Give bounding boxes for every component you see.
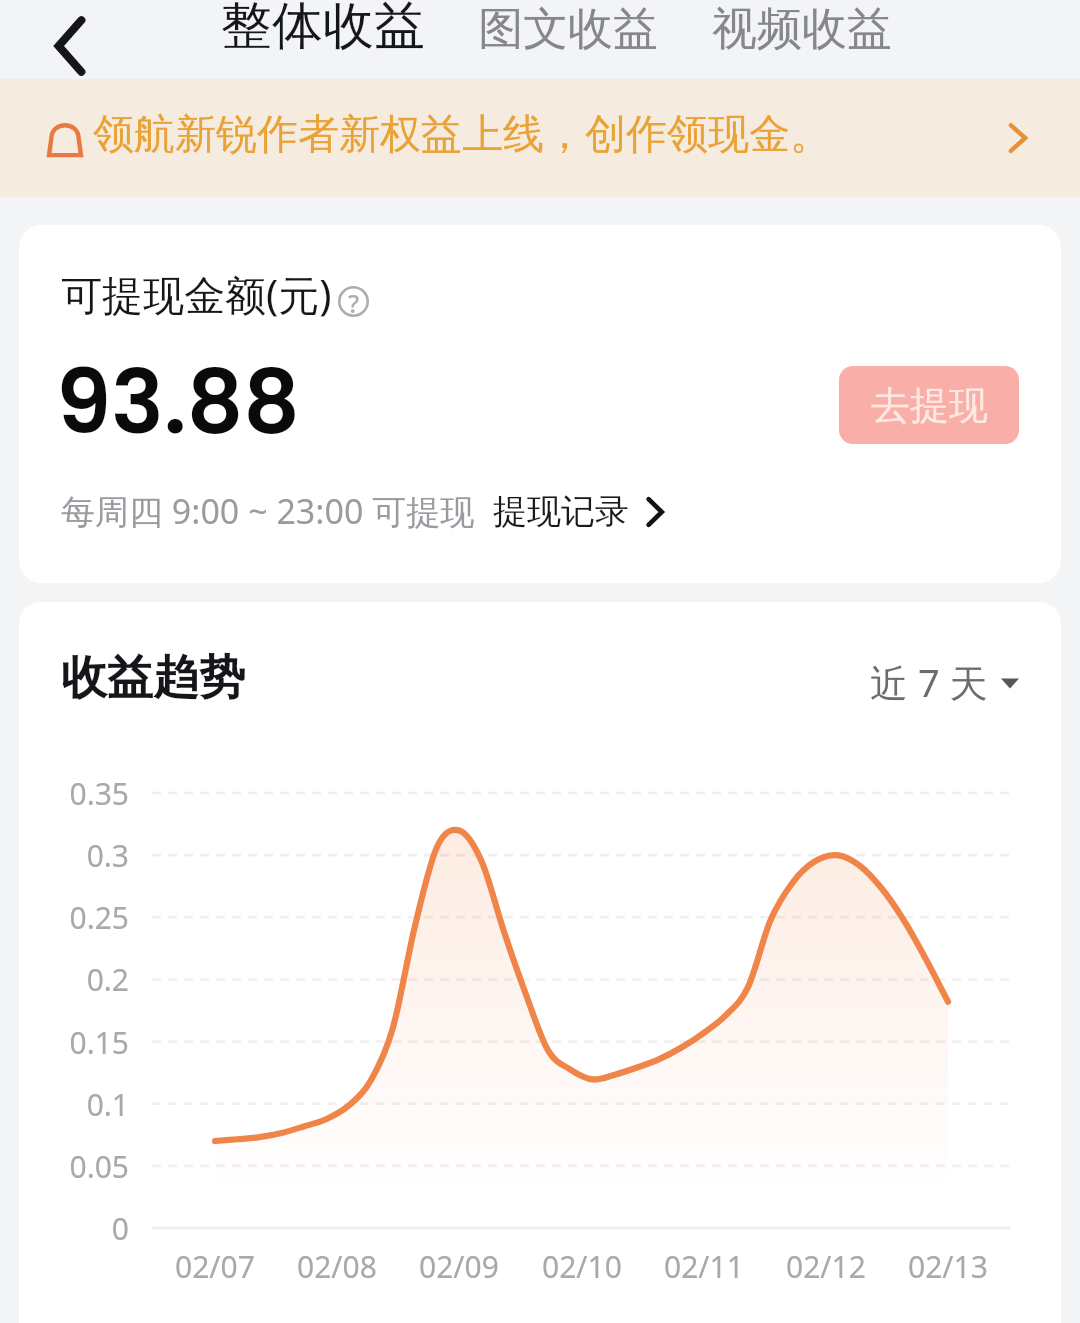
button[interactable]: 整体收益 bbox=[221, 0, 425, 58]
button[interactable]: Help bbox=[338, 286, 369, 317]
staticText: 近 7 天 bbox=[870, 656, 988, 708]
staticText: 提现记录 bbox=[493, 490, 629, 533]
button[interactable]: 图文收益 bbox=[478, 1, 658, 58]
staticText: 02/09 bbox=[419, 1246, 499, 1287]
staticText: 0.05 bbox=[69, 1146, 129, 1187]
staticText: 0.3 bbox=[86, 835, 129, 876]
staticText: 视频收益 bbox=[712, 1, 892, 58]
staticText: 0.25 bbox=[69, 897, 129, 938]
staticText: 去提现 bbox=[871, 381, 988, 430]
button[interactable]: 提现记录 bbox=[493, 490, 665, 533]
staticText: 0.1 bbox=[86, 1084, 129, 1125]
staticText: 02/07 bbox=[175, 1246, 255, 1287]
button[interactable]: Back bbox=[37, 13, 103, 79]
staticText: 02/11 bbox=[664, 1246, 744, 1287]
staticText: 每周四 9:00 ~ 23:00 可提现 bbox=[61, 488, 475, 534]
staticText: 0 bbox=[111, 1208, 129, 1249]
staticText: 收益趋势 bbox=[61, 649, 245, 707]
staticText: 02/10 bbox=[542, 1246, 622, 1287]
staticText: 可提现金额(元) bbox=[61, 266, 332, 322]
button[interactable]: 领航新锐作者新权益上线，创作领现金。 bbox=[0, 79, 1080, 197]
staticText: 02/12 bbox=[786, 1246, 866, 1287]
staticText: 02/08 bbox=[297, 1246, 377, 1287]
staticText: 整体收益 bbox=[221, 0, 425, 58]
staticText: 93.88 bbox=[56, 341, 300, 464]
staticText: 02/13 bbox=[908, 1246, 988, 1287]
button[interactable]: 视频收益 bbox=[712, 1, 892, 58]
staticText: 图文收益 bbox=[478, 1, 658, 58]
button[interactable]: 去提现 bbox=[839, 366, 1019, 444]
button[interactable]: 近 7 天 bbox=[870, 656, 1019, 708]
staticText: 领航新锐作者新权益上线，创作领现金。 bbox=[93, 109, 831, 161]
staticText: ? bbox=[348, 286, 360, 317]
staticText: 0.2 bbox=[86, 959, 129, 1000]
staticText: 0.15 bbox=[69, 1022, 129, 1063]
staticText: 0.35 bbox=[69, 773, 129, 814]
